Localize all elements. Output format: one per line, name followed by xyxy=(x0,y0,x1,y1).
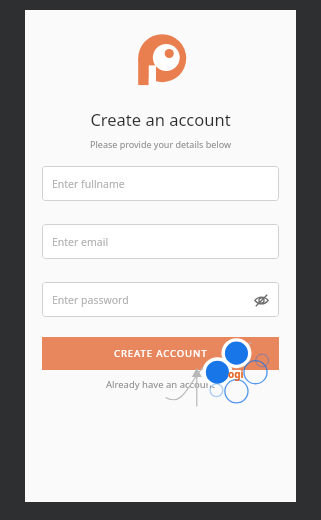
staticText: Already have an account xyxy=(106,378,215,391)
staticText: CREATE ACCOUNT xyxy=(114,347,208,360)
button[interactable]: Enter email xyxy=(42,224,279,259)
staticText: Enter password xyxy=(52,293,129,307)
button[interactable]: Already have an account xyxy=(106,378,215,391)
button[interactable]: Enter fullname xyxy=(42,166,279,201)
staticText: Enter fullname xyxy=(52,177,125,191)
button[interactable]: CREATE ACCOUNT xyxy=(42,337,279,370)
staticText: ogi xyxy=(228,367,244,381)
staticText: Create an account xyxy=(90,108,231,130)
staticText: Please provide your details below xyxy=(90,138,231,150)
button[interactable]: Enter password xyxy=(42,282,279,317)
staticText: Enter email xyxy=(52,235,109,249)
button[interactable]: Toggle password visibility xyxy=(252,291,270,309)
